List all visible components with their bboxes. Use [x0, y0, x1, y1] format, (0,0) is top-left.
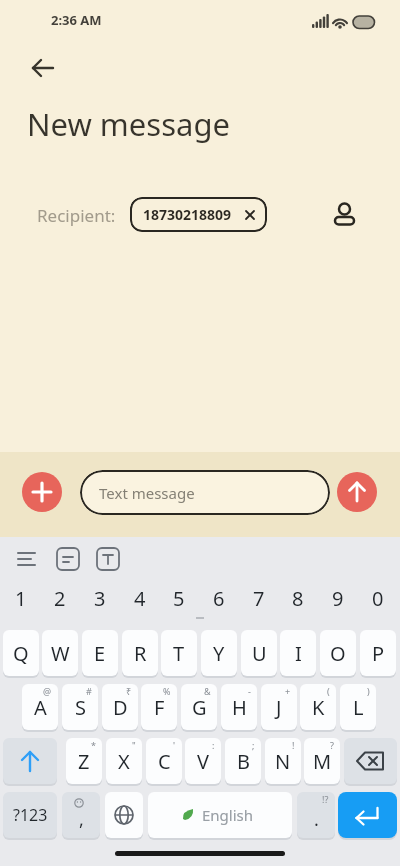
button[interactable]: , [62, 792, 100, 838]
button[interactable]: V [185, 738, 221, 784]
button[interactable] [330, 198, 360, 230]
staticText: U [252, 640, 267, 667]
staticText: P [372, 640, 385, 667]
button[interactable]: 7 [241, 582, 277, 614]
staticText: Text message [99, 483, 195, 503]
button[interactable]: English [148, 792, 292, 838]
button[interactable]: X [106, 738, 142, 784]
staticText: A [34, 694, 47, 721]
staticText: 7 [253, 585, 265, 612]
staticText: ? [330, 739, 334, 751]
button[interactable] [53, 544, 83, 574]
button[interactable]: 4 [122, 582, 158, 614]
button[interactable]: . [297, 792, 335, 838]
staticText: Recipient: [37, 204, 116, 227]
staticText: T [173, 640, 185, 667]
button[interactable]: Y [201, 630, 237, 676]
button[interactable]: Z [66, 738, 102, 784]
staticText: X [118, 748, 130, 775]
staticText: - [248, 685, 251, 697]
staticText: ! [292, 739, 295, 751]
button[interactable]: F [141, 684, 177, 730]
staticText: Y [213, 640, 225, 667]
button[interactable]: O [320, 630, 356, 676]
button[interactable]: G [181, 684, 217, 730]
staticText: H [232, 694, 247, 721]
staticText: 8 [292, 585, 304, 612]
button[interactable]: 0 [360, 582, 396, 614]
button[interactable]: ?123 [3, 792, 57, 838]
staticText: " [132, 739, 136, 751]
staticText: 5 [173, 585, 185, 612]
button[interactable]: L [340, 684, 376, 730]
button[interactable]: K [300, 684, 336, 730]
button[interactable]: W [42, 630, 78, 676]
staticText: ' [173, 739, 176, 751]
button[interactable]: E [82, 630, 118, 676]
button[interactable]: M [304, 738, 340, 784]
button[interactable]: 1 [3, 582, 39, 614]
button[interactable] [105, 792, 143, 838]
staticText: 0 [372, 585, 384, 612]
staticText: M [313, 748, 332, 775]
button[interactable]: 2 [42, 582, 78, 614]
button[interactable]: 18730218809 [130, 197, 267, 232]
button[interactable]: Q [3, 630, 39, 676]
button[interactable]: 3 [82, 582, 118, 614]
button[interactable]: R [122, 630, 158, 676]
button[interactable]: I [280, 630, 316, 676]
staticText: English [202, 805, 254, 825]
button[interactable] [22, 472, 62, 512]
button[interactable]: S [62, 684, 98, 730]
button[interactable] [93, 544, 123, 574]
staticText: ?123 [13, 804, 48, 826]
button[interactable]: 6 [201, 582, 237, 614]
button[interactable]: U [241, 630, 277, 676]
staticText: . [314, 807, 319, 832]
button[interactable] [3, 738, 57, 784]
button[interactable]: H [221, 684, 257, 730]
staticText: 4 [134, 585, 146, 612]
staticText: Z [78, 748, 90, 775]
staticText: ) [367, 685, 370, 697]
staticText: J [276, 694, 282, 721]
button[interactable]: T [161, 630, 197, 676]
staticText: ( [327, 685, 330, 697]
staticText: + [285, 685, 291, 697]
staticText: !? [322, 793, 329, 805]
staticText: E [94, 640, 106, 667]
staticText: # [86, 685, 92, 697]
staticText: , [79, 807, 84, 832]
staticText: ₹ [126, 685, 132, 697]
button[interactable]: 8 [280, 582, 316, 614]
button[interactable]: P [360, 630, 396, 676]
staticText: & [204, 685, 211, 697]
button[interactable]: Text message [80, 470, 330, 515]
button[interactable] [12, 544, 42, 574]
button[interactable]: 5 [161, 582, 197, 614]
button[interactable] [337, 472, 377, 512]
button[interactable] [344, 738, 397, 784]
button[interactable] [338, 792, 397, 838]
staticText: R [134, 640, 147, 667]
staticText: N [275, 748, 291, 775]
button[interactable]: A [22, 684, 58, 730]
staticText: 9 [332, 585, 344, 612]
staticText: C [158, 748, 171, 775]
button[interactable]: B [225, 738, 261, 784]
button[interactable]: J [261, 684, 297, 730]
staticText: ; [252, 739, 255, 751]
staticText: 1 [15, 585, 27, 612]
button[interactable]: C [146, 738, 182, 784]
staticText: : [212, 739, 215, 751]
button[interactable]: N [265, 738, 301, 784]
button[interactable]: 9 [320, 582, 356, 614]
button[interactable] [22, 52, 64, 86]
staticText: D [113, 694, 128, 721]
staticText: 18730218809 [143, 205, 232, 224]
staticText: % [163, 685, 171, 697]
staticText: F [154, 694, 165, 721]
button[interactable]: D [102, 684, 138, 730]
staticText: S [75, 694, 86, 721]
staticText: Q [13, 640, 29, 667]
